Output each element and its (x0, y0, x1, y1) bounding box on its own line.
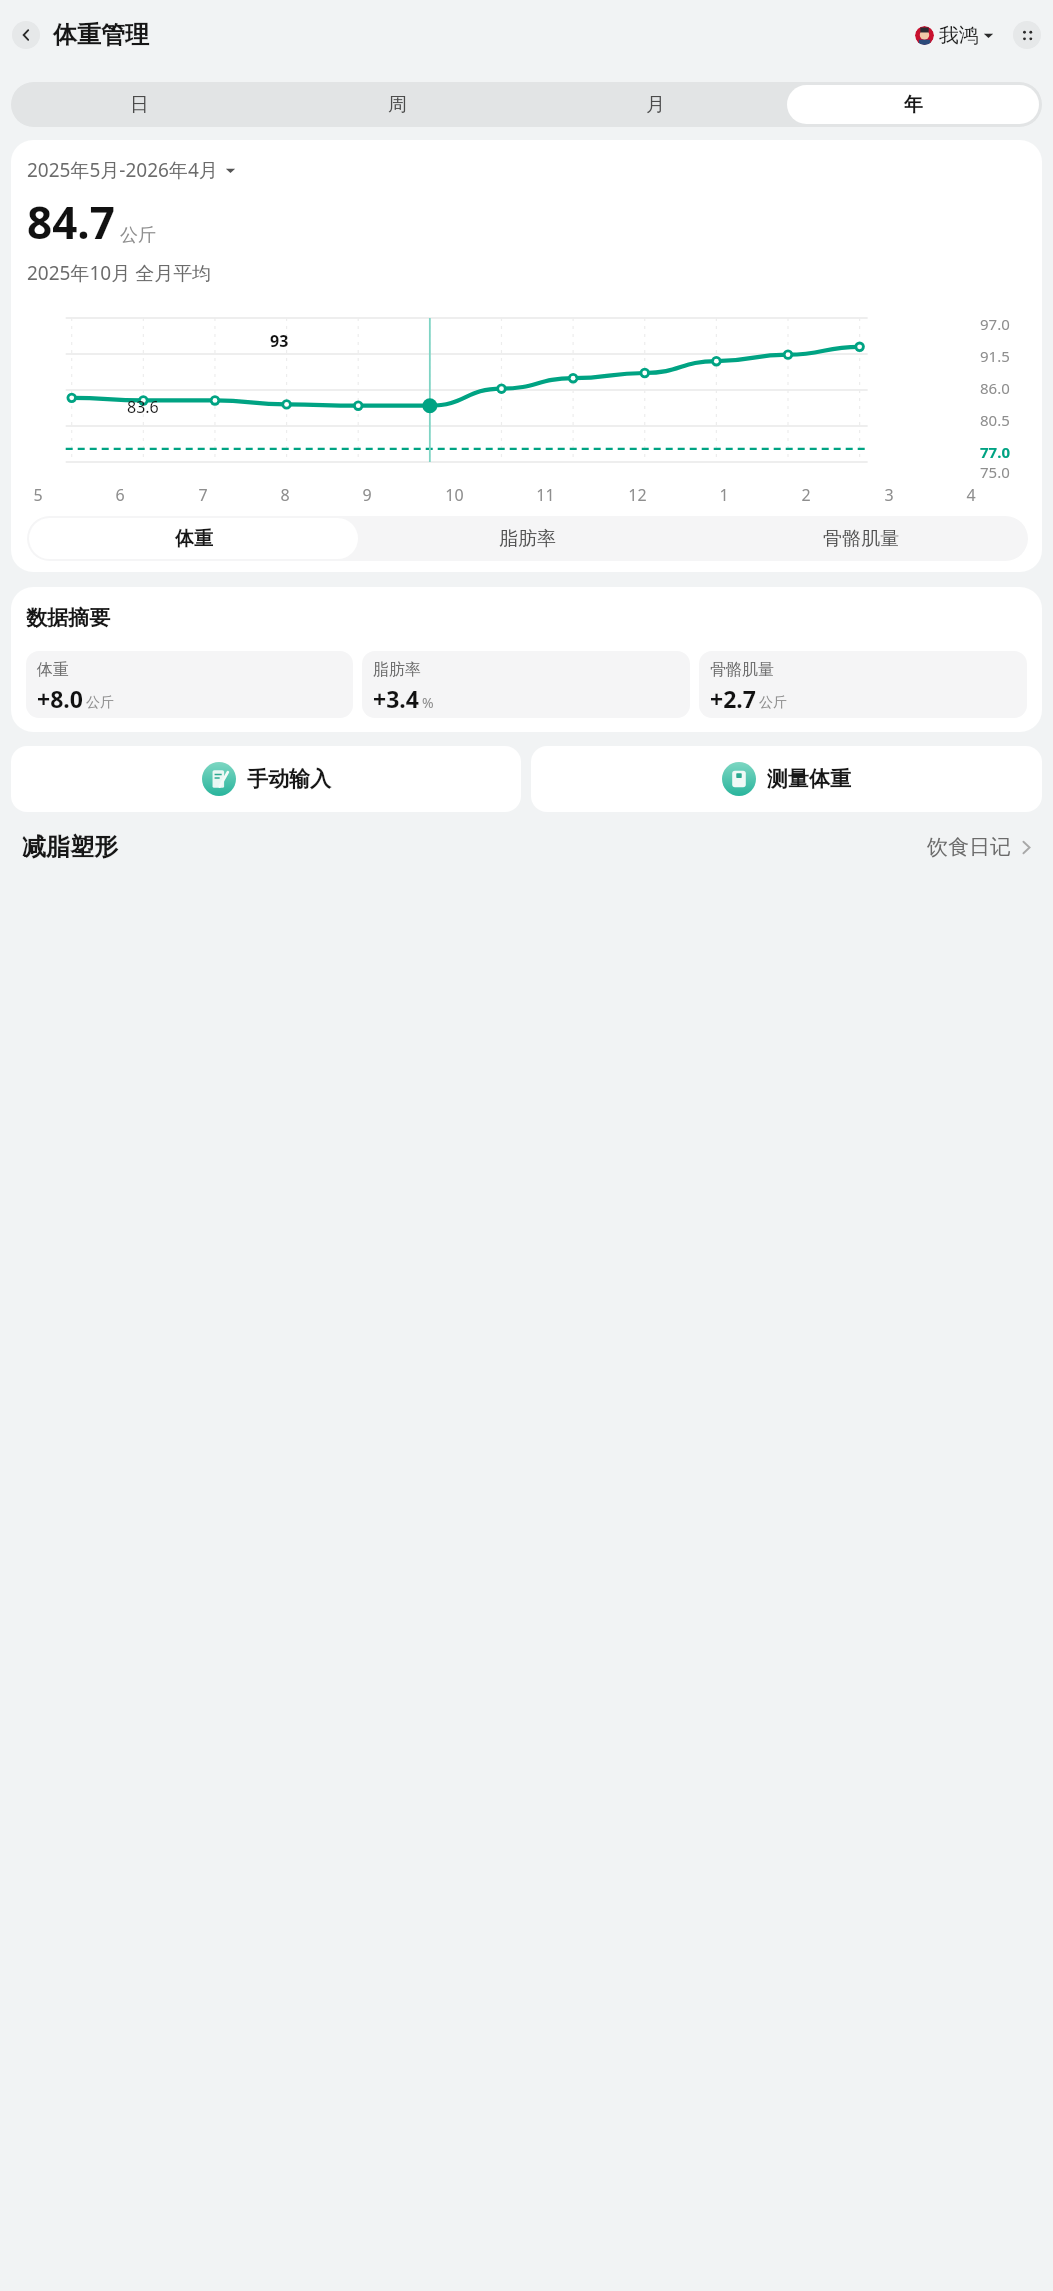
staticText: % (422, 693, 434, 712)
staticText: 4 (966, 484, 976, 506)
button[interactable]: 脂肪率 (362, 651, 690, 718)
button[interactable]: 骨骼肌量 (696, 518, 1026, 559)
staticText: 83.6 (127, 396, 159, 418)
staticText: 2 (801, 484, 811, 506)
staticText: 86.0 (980, 378, 1010, 398)
button[interactable]: 骨骼肌量 (699, 651, 1027, 718)
button[interactable]: 2025年5月-2026年4月 (27, 157, 236, 183)
staticText: 84.7 (27, 192, 115, 252)
staticText: 年 (904, 93, 923, 117)
staticText: 10 (445, 484, 464, 506)
staticText: 我鸿 (939, 23, 979, 48)
button[interactable]: 手动输入 (11, 746, 521, 812)
button[interactable]: 年 (787, 85, 1039, 124)
staticText: 公斤 (759, 694, 787, 712)
staticText: 手动输入 (247, 766, 331, 792)
staticText: 1 (719, 484, 729, 506)
staticText: 97.0 (980, 314, 1010, 334)
staticText: 脂肪率 (499, 527, 556, 551)
staticText: 75.0 (980, 462, 1010, 482)
staticText: 93 (270, 330, 289, 352)
staticText: 91.5 (980, 346, 1010, 366)
staticText: 80.5 (980, 410, 1010, 430)
staticText: 体重 (37, 660, 69, 680)
staticText: 脂肪率 (373, 660, 421, 680)
staticText: 日 (130, 93, 149, 117)
staticText: 77.0 (980, 442, 1010, 462)
button[interactable]: 日 (14, 85, 265, 124)
staticText: 6 (115, 484, 125, 506)
button[interactable]: Back (12, 21, 40, 49)
staticText: 12 (628, 484, 647, 506)
staticText: 减脂塑形 (22, 832, 118, 862)
staticText: 2025年10月 全月平均 (27, 260, 212, 286)
staticText: 8 (280, 484, 290, 506)
button[interactable]: More options (1013, 21, 1041, 49)
staticText: 体重 (175, 527, 213, 551)
button[interactable]: 我鸿 (915, 23, 994, 48)
staticText: 数据摘要 (26, 605, 110, 631)
staticText: +8.0 (37, 683, 83, 714)
staticText: 体重管理 (53, 20, 149, 50)
staticText: 9 (362, 484, 372, 506)
staticText: 测量体重 (767, 766, 851, 792)
staticText: 公斤 (120, 224, 156, 247)
button[interactable]: 体重 (26, 651, 353, 718)
staticText: 骨骼肌量 (823, 527, 899, 551)
button[interactable]: 脂肪率 (362, 518, 692, 559)
staticText: 公斤 (86, 694, 114, 712)
staticText: 月 (646, 93, 665, 117)
button[interactable]: 周 (271, 85, 523, 124)
staticText: 周 (388, 93, 407, 117)
button[interactable]: 测量体重 (531, 746, 1042, 812)
staticText: 骨骼肌量 (710, 660, 774, 680)
button[interactable]: 饮食日记 (927, 834, 1035, 860)
staticText: 5 (33, 484, 43, 506)
staticText: 饮食日记 (927, 834, 1011, 860)
button[interactable]: 体重 (29, 518, 358, 559)
staticText: 2025年5月-2026年4月 (27, 157, 218, 183)
staticText: 7 (198, 484, 208, 506)
staticText: +3.4 (373, 683, 419, 714)
staticText: 3 (884, 484, 894, 506)
staticText: +2.7 (710, 683, 756, 714)
staticText: 11 (536, 484, 555, 506)
button[interactable]: 月 (529, 85, 781, 124)
